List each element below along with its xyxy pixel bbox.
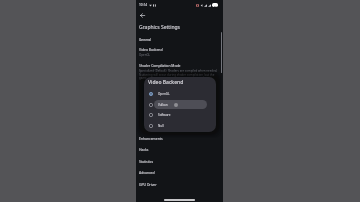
staticText: Graphics Settings — [139, 24, 180, 31]
staticText: Null — [158, 124, 164, 128]
button[interactable]: OpenGL — [144, 89, 216, 99]
staticText: OpenGL — [158, 92, 170, 96]
staticText: 62 — [214, 4, 217, 7]
staticText: Software — [158, 113, 171, 117]
staticText: Video Backend — [139, 47, 163, 52]
staticText: GPU Driver — [139, 182, 157, 187]
staticText: Shader Compilation Mode — [139, 63, 181, 68]
staticText: OpenGL — [139, 53, 151, 57]
staticText: 10:14 — [139, 3, 148, 7]
staticText: Statistics — [139, 159, 154, 164]
staticText: Specialized (Default). Shaders are compi… — [139, 69, 220, 79]
button[interactable]: Advanced — [136, 167, 223, 178]
button[interactable]: Statistics — [136, 156, 223, 167]
button[interactable]: Hacks — [136, 144, 223, 155]
button[interactable]: Software — [144, 110, 216, 120]
staticText: Video Backend — [148, 79, 184, 86]
button[interactable]: Enhancements — [136, 133, 223, 144]
button[interactable]: Shader Compilation Mode — [136, 60, 223, 79]
staticText: Hacks — [139, 147, 149, 152]
button[interactable]: GPU Driver — [136, 179, 223, 190]
staticText: Vulkan — [158, 103, 168, 107]
button[interactable]: Null — [144, 121, 216, 131]
button[interactable]: Back — [137, 10, 148, 21]
staticText: Advanced — [139, 170, 155, 175]
staticText: Enhancements — [139, 136, 163, 141]
button[interactable]: Video Backend — [136, 44, 223, 57]
staticText: General — [139, 38, 151, 42]
button[interactable]: Vulkan — [144, 100, 216, 110]
